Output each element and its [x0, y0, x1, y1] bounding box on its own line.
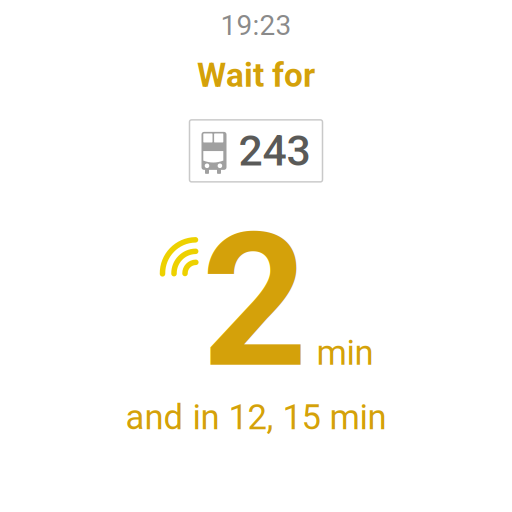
staticText: min — [316, 333, 373, 373]
staticText: Wait for — [197, 56, 315, 95]
staticText: 2 — [201, 193, 307, 410]
button[interactable]: 243 — [189, 120, 322, 182]
staticText: 19:23 — [220, 9, 291, 42]
staticText: and in 12, 15 min — [125, 397, 386, 438]
staticText: 243 — [238, 126, 310, 176]
